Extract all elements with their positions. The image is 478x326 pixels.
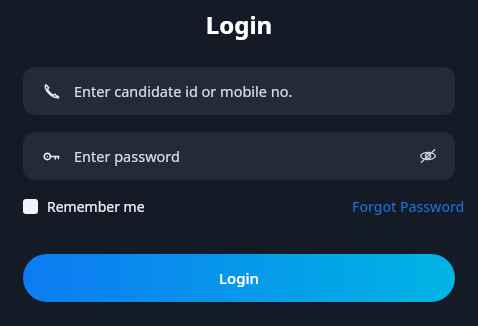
staticText: Enter password — [74, 146, 409, 166]
staticText: Forgot Password — [352, 197, 465, 216]
button[interactable]: Remember me — [23, 193, 145, 220]
staticText: Login — [0, 8, 478, 41]
button[interactable]: Enter candidate id or mobile no. — [23, 67, 455, 115]
staticText: Login — [219, 268, 259, 288]
button[interactable]: Login — [23, 254, 455, 302]
button[interactable]: Show password — [415, 143, 441, 169]
staticText: Enter candidate id or mobile no. — [74, 81, 441, 101]
button[interactable]: Forgot Password — [342, 197, 455, 216]
button[interactable]: Enter password — [23, 132, 455, 180]
staticText: Remember me — [47, 197, 145, 216]
